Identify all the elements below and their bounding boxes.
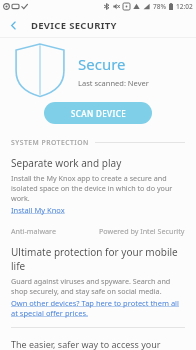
staticText: Install My Knox: [11, 205, 65, 215]
staticText: 12:02: [176, 2, 193, 11]
button[interactable]: Own other devices? Tap here to protect t…: [11, 298, 185, 318]
button[interactable]: SCAN DEVICE: [44, 102, 152, 124]
staticText: Secure: [78, 54, 126, 74]
staticText: Anti-malware: [11, 226, 56, 236]
other: Security shield: [14, 43, 66, 97]
button[interactable]: Install My Knox: [11, 205, 65, 215]
staticText: Guard against viruses and spyware. Searc…: [11, 276, 185, 296]
button[interactable]: Back: [3, 15, 23, 35]
staticText: Install the My Knox app to create a secu…: [11, 173, 185, 203]
staticText: Ultimate protection for your mobile life: [11, 245, 185, 273]
staticText: DEVICE SECURITY: [31, 19, 117, 32]
staticText: Separate work and play: [11, 156, 122, 170]
staticText: Powered by Intel Security: [99, 226, 185, 236]
staticText: SCAN DEVICE: [71, 108, 126, 119]
staticText: Own other devices? Tap here to protect t…: [11, 298, 185, 318]
staticText: Last scanned: Never: [78, 78, 149, 88]
staticText: 78%: [153, 2, 166, 11]
staticText: SYSTEM PROTECTION: [11, 138, 89, 147]
staticText: The easier, safer way to access your dig…: [11, 338, 185, 350]
